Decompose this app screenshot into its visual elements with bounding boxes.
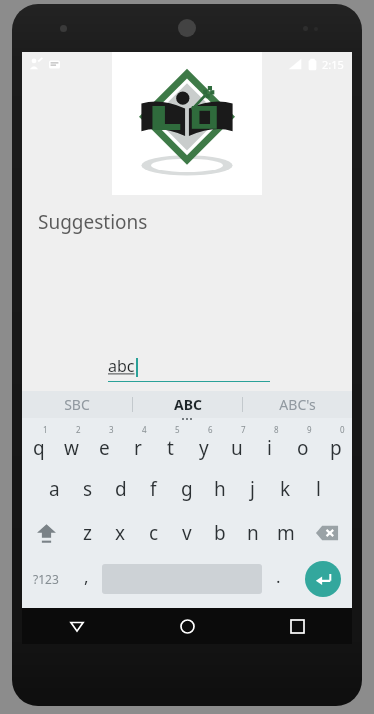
button[interactable]: s — [71, 467, 104, 511]
button[interactable]: 1 — [22, 423, 55, 467]
button[interactable]: n — [236, 511, 269, 555]
button[interactable]: k — [269, 467, 302, 511]
staticText: 5 — [175, 424, 180, 435]
button[interactable]: Backspace — [302, 511, 352, 555]
staticText: i — [267, 435, 272, 461]
button[interactable]: Back — [22, 608, 132, 644]
staticText: l — [316, 476, 321, 502]
staticText: d — [115, 476, 127, 502]
button[interactable]: Enter — [305, 561, 341, 597]
button[interactable]: d — [104, 467, 137, 511]
staticText: 2 — [76, 424, 81, 435]
button[interactable]: ?123 — [22, 555, 70, 603]
staticText: ABC — [174, 395, 202, 414]
button[interactable]: m — [269, 511, 302, 555]
staticText: g — [181, 476, 193, 502]
staticText: 2:15 — [322, 57, 344, 72]
staticText: ABC's — [279, 395, 316, 414]
button[interactable]: 2 — [55, 423, 88, 467]
staticText: . — [276, 565, 281, 588]
staticText: e — [99, 435, 110, 461]
staticText: p — [330, 435, 342, 461]
staticText: w — [64, 435, 79, 461]
staticText: s — [83, 476, 93, 502]
staticText: Suggestions — [38, 209, 148, 235]
staticText: h — [214, 476, 226, 502]
staticText: 9 — [307, 424, 312, 435]
staticText: x — [115, 520, 126, 546]
staticText: 0 — [340, 424, 345, 435]
staticText: u — [231, 435, 243, 461]
button[interactable]: x — [104, 511, 137, 555]
button[interactable]: 8 — [253, 423, 286, 467]
button[interactable]: l — [302, 467, 335, 511]
button[interactable]: ABC — [133, 391, 242, 418]
button[interactable]: , — [70, 555, 102, 603]
button[interactable]: h — [203, 467, 236, 511]
staticText: a — [49, 476, 60, 502]
button[interactable]: 4 — [121, 423, 154, 467]
staticText: 4 — [142, 424, 147, 435]
staticText: j — [250, 476, 255, 502]
button[interactable]: 3 — [88, 423, 121, 467]
button[interactable]: 9 — [286, 423, 319, 467]
button[interactable]: v — [170, 511, 203, 555]
button[interactable]: abc — [108, 355, 270, 382]
staticText: SBC — [64, 395, 90, 414]
button[interactable]: a — [38, 467, 71, 511]
staticText: ?123 — [33, 571, 59, 587]
button[interactable]: g — [170, 467, 203, 511]
button[interactable]: z — [71, 511, 104, 555]
staticText: v — [182, 520, 192, 546]
staticText: 3 — [109, 424, 114, 435]
staticText: k — [280, 476, 291, 502]
button[interactable]: Home — [132, 608, 242, 644]
button[interactable]: 0 — [319, 423, 352, 467]
button[interactable]: c — [137, 511, 170, 555]
button[interactable]: ABC's — [243, 391, 352, 418]
staticText: c — [149, 520, 159, 546]
button[interactable]: f — [137, 467, 170, 511]
staticText: q — [33, 435, 45, 461]
staticText: r — [134, 435, 142, 461]
button[interactable]: 6 — [187, 423, 220, 467]
staticText: o — [297, 435, 309, 461]
staticText: z — [83, 520, 92, 546]
button[interactable]: SBC — [22, 391, 132, 418]
staticText: n — [247, 520, 259, 546]
button[interactable]: Recents — [242, 608, 352, 644]
staticText: y — [199, 435, 209, 461]
button[interactable]: . — [262, 555, 294, 603]
staticText: , — [84, 565, 89, 588]
button[interactable]: 5 — [154, 423, 187, 467]
button[interactable]: b — [203, 511, 236, 555]
staticText: abc — [108, 355, 135, 377]
staticText: 8 — [274, 424, 279, 435]
staticText: b — [214, 520, 226, 546]
staticText: 6 — [208, 424, 213, 435]
staticText: t — [167, 435, 174, 461]
button[interactable]: j — [236, 467, 269, 511]
button[interactable]: Shift — [22, 511, 71, 555]
staticText: 1 — [43, 424, 48, 435]
staticText: f — [150, 476, 157, 502]
staticText: m — [277, 520, 295, 546]
staticText: 7 — [241, 424, 246, 435]
button[interactable]: 7 — [220, 423, 253, 467]
